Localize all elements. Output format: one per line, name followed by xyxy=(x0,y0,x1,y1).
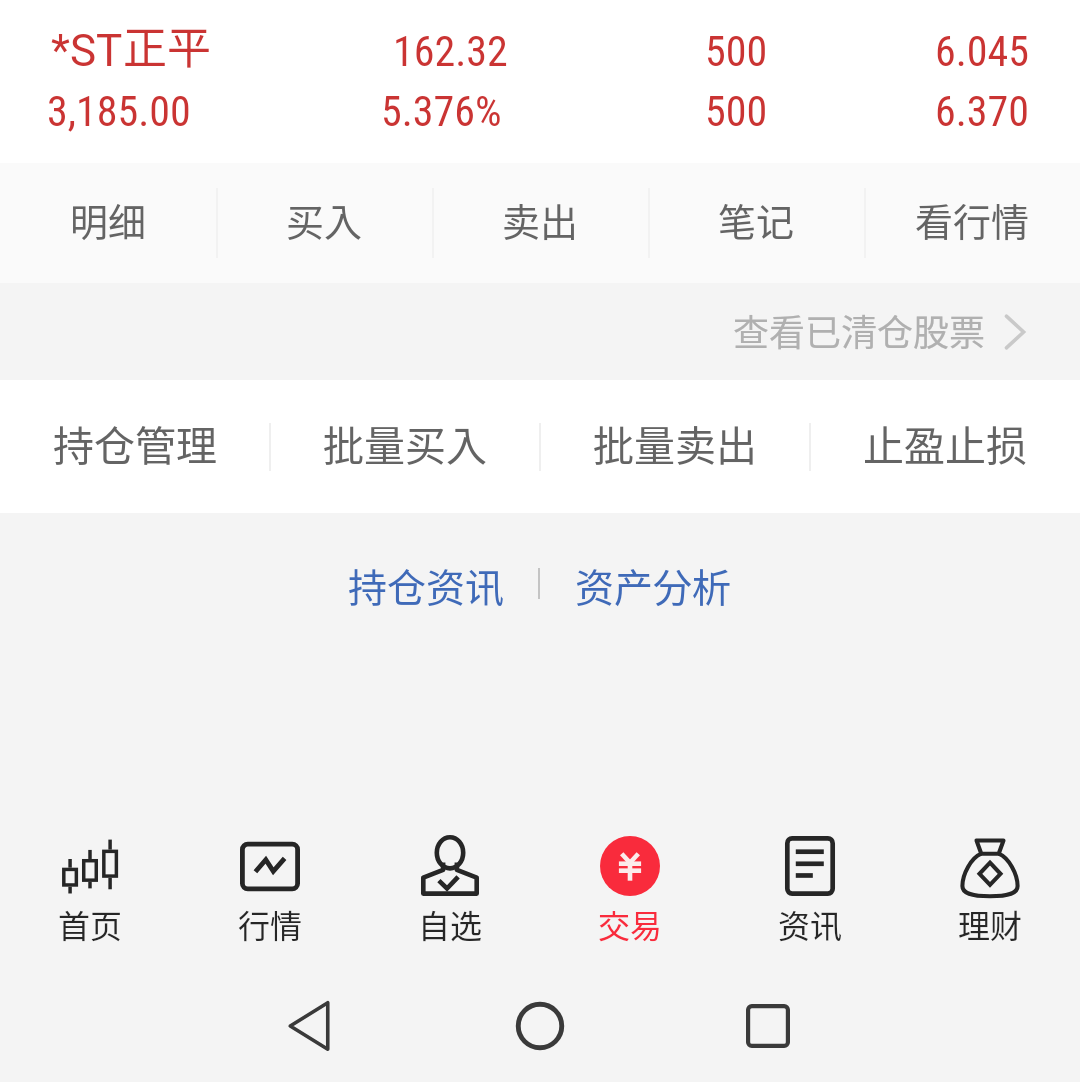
staticText: 理财 xyxy=(958,901,1023,947)
button[interactable]: 持仓管理 xyxy=(0,380,270,513)
staticText: 买入 xyxy=(286,192,363,247)
staticText: 正平 xyxy=(123,13,211,77)
staticText: 6.370 xyxy=(935,87,1030,136)
button[interactable]: 明细 xyxy=(0,163,216,283)
button[interactable]: Home xyxy=(480,970,600,1082)
button[interactable]: 看行情 xyxy=(864,163,1080,283)
button[interactable]: Back xyxy=(249,970,369,1082)
staticText: 162.32 xyxy=(393,27,508,76)
button[interactable]: 卖出 xyxy=(432,163,648,283)
staticText: 资产分析 xyxy=(575,557,732,613)
button[interactable]: 自选 xyxy=(360,816,540,970)
staticText: 自选 xyxy=(418,901,483,947)
staticText: *ST xyxy=(51,25,123,77)
button[interactable]: 交易 xyxy=(540,816,720,970)
staticText: 6.045 xyxy=(935,27,1030,76)
staticText: 500 xyxy=(705,27,768,76)
staticText: 笔记 xyxy=(718,192,795,247)
button[interactable]: 资讯 xyxy=(720,816,900,970)
button[interactable]: 首页 xyxy=(0,816,180,970)
staticText: 持仓资讯 xyxy=(348,557,505,613)
button[interactable]: 持仓资讯 xyxy=(330,545,523,625)
staticText: 5.376% xyxy=(381,87,502,136)
staticText: 3,185.00 xyxy=(47,87,191,136)
button[interactable]: 批量买入 xyxy=(270,380,540,513)
staticText: 持仓管理 xyxy=(53,413,217,472)
button[interactable]: 批量卖出 xyxy=(540,380,810,513)
staticText: 明细 xyxy=(70,192,147,247)
staticText: 查看已清仓股票 xyxy=(733,304,986,356)
button[interactable]: 查看已清仓股票 xyxy=(693,290,1080,374)
staticText: 首页 xyxy=(58,901,123,947)
staticText: 止盈止损 xyxy=(863,413,1027,472)
staticText: 卖出 xyxy=(502,192,579,247)
staticText: 批量卖出 xyxy=(593,413,757,472)
staticText: 500 xyxy=(705,87,768,136)
button[interactable]: 理财 xyxy=(900,816,1080,970)
staticText: 批量买入 xyxy=(323,413,487,472)
button[interactable]: Recents xyxy=(708,970,828,1082)
button[interactable]: 行情 xyxy=(180,816,360,970)
button[interactable]: 止盈止损 xyxy=(810,380,1080,513)
button[interactable]: 资产分析 xyxy=(557,545,750,625)
staticText: 资讯 xyxy=(778,901,843,947)
button[interactable]: 笔记 xyxy=(648,163,864,283)
button[interactable]: 买入 xyxy=(216,163,432,283)
staticText: 交易 xyxy=(598,901,663,947)
staticText: 行情 xyxy=(238,901,303,947)
staticText: 看行情 xyxy=(915,192,1030,247)
